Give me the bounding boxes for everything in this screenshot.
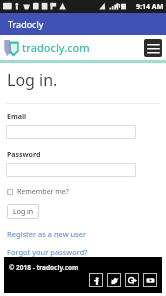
staticText: Register as a new user xyxy=(7,229,87,239)
button[interactable]: Forgot your password? xyxy=(7,247,88,257)
staticText: Password xyxy=(7,150,41,160)
button[interactable] xyxy=(6,163,136,177)
button[interactable]: Twitter xyxy=(107,273,121,287)
button[interactable]: Google Plus xyxy=(125,273,139,287)
button[interactable]: Menu xyxy=(144,39,162,57)
button[interactable]: Remember me? xyxy=(7,187,69,197)
button[interactable]: YouTube xyxy=(143,273,157,287)
staticText: Log in. xyxy=(7,69,58,91)
staticText: tradocly.com xyxy=(22,40,90,55)
button[interactable]: Facebook xyxy=(89,273,103,287)
staticText: Tradocly xyxy=(8,18,44,30)
staticText: Forgot your password? xyxy=(7,247,88,257)
button[interactable]: Log in xyxy=(7,204,39,219)
button[interactable] xyxy=(6,125,136,139)
staticText: 9:14 AM xyxy=(136,2,164,12)
staticText: © 2018 - tradocly.com xyxy=(9,263,79,272)
staticText: 41% xyxy=(115,3,126,10)
button[interactable]: Tradocly xyxy=(0,13,166,35)
button[interactable]: Register as a new user xyxy=(7,229,87,239)
staticText: Remember me? xyxy=(17,187,69,197)
staticText: Email xyxy=(7,112,27,122)
staticText: Log in xyxy=(13,207,34,217)
